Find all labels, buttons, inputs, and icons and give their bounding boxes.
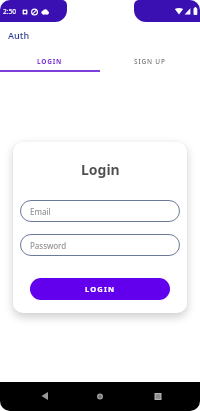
button[interactable] [66,382,133,411]
staticText: SIGN UP [134,57,166,66]
staticText: LOGIN [85,284,116,294]
button[interactable]: Email [20,200,180,222]
button[interactable] [133,382,200,411]
staticText: Password [30,240,67,251]
staticText: 2:50 [3,7,16,16]
button[interactable]: LOGIN [30,278,170,300]
staticText: Auth [8,29,30,41]
button[interactable]: SIGN UP [100,53,200,69]
button[interactable] [0,382,66,411]
staticText: LOGIN [37,57,63,66]
button[interactable]: Password [20,234,180,256]
button[interactable]: LOGIN [0,53,100,69]
staticText: Login [81,160,120,179]
staticText: Email [30,206,51,217]
